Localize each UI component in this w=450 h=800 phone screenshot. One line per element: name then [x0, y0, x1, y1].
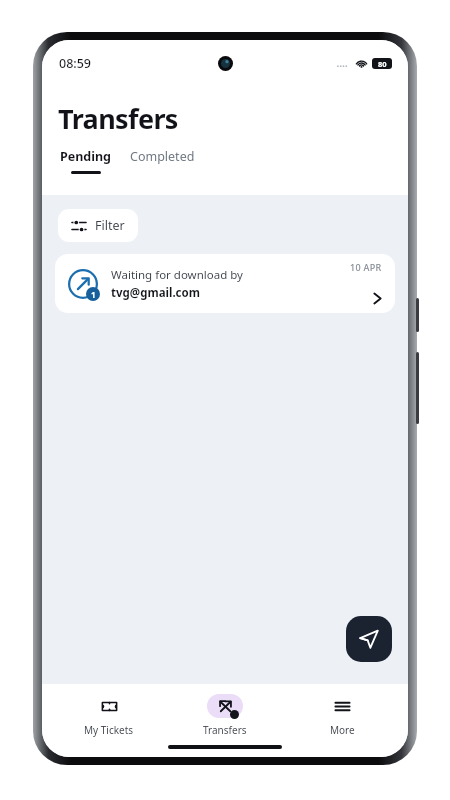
button[interactable]: Filter [58, 209, 138, 242]
button[interactable]: Transfers [175, 692, 275, 739]
staticText: More [330, 723, 355, 737]
button[interactable]: 1 [55, 254, 395, 313]
button[interactable]: More [292, 692, 392, 739]
staticText: 10 APR [350, 261, 382, 273]
staticText: My Tickets [84, 723, 134, 737]
staticText: tvg@gmail.com [111, 285, 200, 301]
staticText: Pending [60, 148, 112, 165]
staticText: 08:59 [59, 55, 92, 72]
button[interactable]: Completed [128, 147, 197, 175]
staticText: Transfers [58, 100, 178, 137]
staticText: Transfers [203, 723, 247, 737]
staticText: 1 [91, 289, 96, 300]
staticText: Filter [95, 217, 125, 234]
staticText: Waiting for download by [111, 267, 243, 283]
staticText: 80 [378, 59, 387, 69]
button[interactable]: My Tickets [59, 692, 159, 739]
button[interactable]: Pending [58, 147, 114, 175]
button[interactable]: New transfer [346, 616, 392, 662]
staticText: Completed [130, 148, 195, 165]
